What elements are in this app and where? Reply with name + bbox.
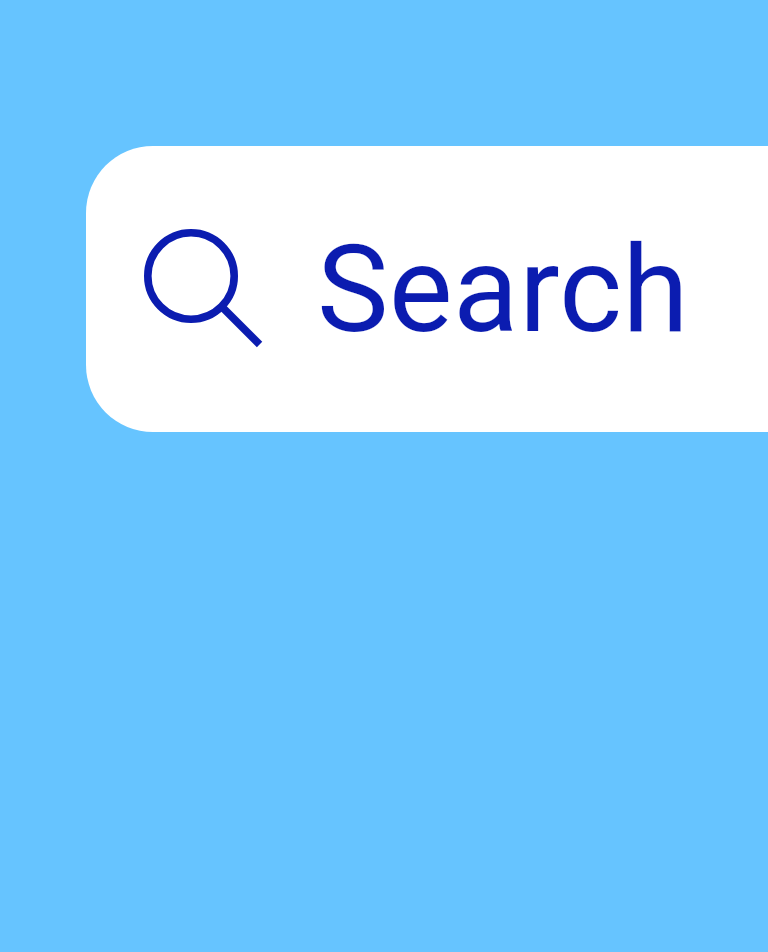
button[interactable]: Search <box>86 146 768 432</box>
staticText: Search <box>317 219 689 360</box>
